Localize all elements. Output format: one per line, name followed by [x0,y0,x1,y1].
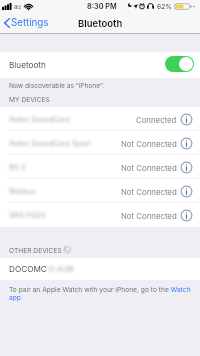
staticText: Now discoverable as “iPhone”. [9,82,105,90]
button[interactable]: Device info [180,185,193,198]
button[interactable]: Nimbus [0,179,200,203]
staticText: Not Connected [121,139,177,148]
staticText: Bluetooth [78,18,123,29]
staticText: MY DEVICES [9,96,50,104]
staticText: Settings [11,17,49,29]
button[interactable]: Bluetooth [0,52,200,78]
button[interactable]: Device info [180,209,193,222]
staticText: Not Connected [121,211,177,220]
button[interactable]: DOCOMC [0,258,200,280]
button[interactable]: Anker SoundCore Sport [0,131,200,155]
staticText: OTHER DEVICES [9,247,62,255]
button[interactable]: BS-2 [0,155,200,179]
staticText: DOCOMC [9,264,47,274]
staticText: Connected [136,115,177,124]
button[interactable]: SRX-HS20 [0,203,200,227]
staticText: Not Connected [121,187,177,196]
staticText: To pair an Apple Watch with your iPhone,… [9,286,195,302]
staticText: 8:30 PM [87,2,117,11]
staticText: Nimbus [9,187,36,196]
button[interactable]: Anker SoundCore [0,107,200,131]
staticText: Bluetooth [9,60,46,70]
staticText: Anker SoundCore Sport [9,139,91,148]
staticText: au [14,3,21,10]
staticText: O-A39 [48,264,74,274]
button[interactable]: Device info [180,137,193,150]
staticText: BS-2 [9,163,27,172]
button[interactable]: Device info [180,113,193,126]
staticText: 62% [157,2,173,10]
button[interactable]: Device info [180,161,193,174]
staticText: Anker SoundCore [9,115,70,124]
button[interactable]: Bluetooth on [165,56,194,72]
staticText: Not Connected [121,163,177,172]
staticText: SRX-HS20 [9,211,46,220]
button[interactable]: Settings [2,14,51,32]
